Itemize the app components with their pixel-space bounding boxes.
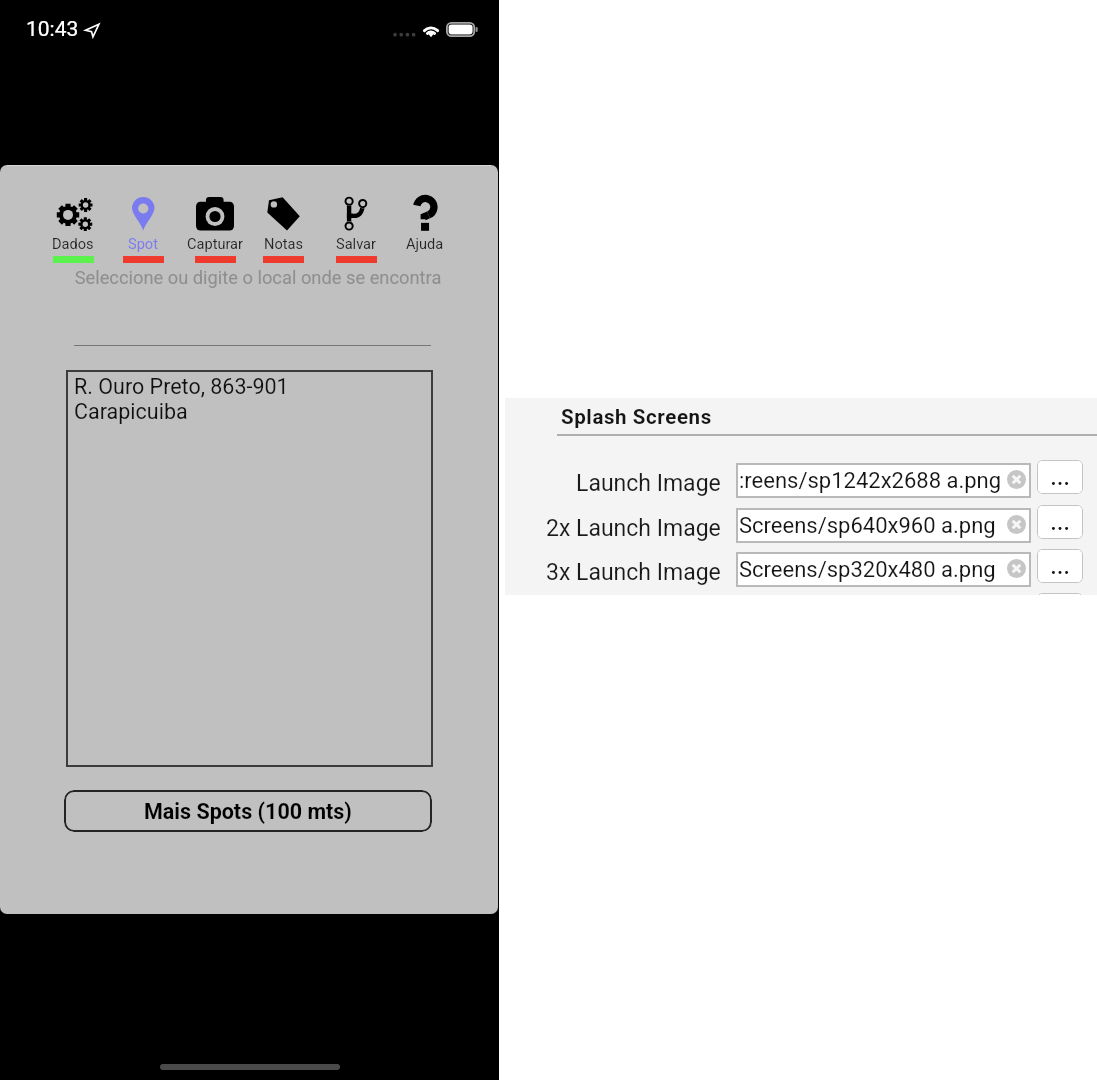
staticText: Mais Spots (100 mts) xyxy=(144,799,352,824)
button[interactable]: Dados xyxy=(38,196,108,266)
button[interactable]: Screens/sp640x960 a.png xyxy=(736,508,1031,543)
button[interactable]: :reens/sp1242x2688 a.png xyxy=(736,463,1031,498)
button[interactable]: Browse xyxy=(1037,505,1083,539)
button[interactable]: Spot xyxy=(108,196,178,266)
staticText: 2x Launch Image xyxy=(546,515,721,542)
button[interactable]: Clear xyxy=(1007,470,1026,489)
staticText: R. Ouro Preto, 863-901 xyxy=(74,374,289,399)
staticText: Launch Image xyxy=(576,470,721,497)
staticText: :reens/sp1242x2688 a.png xyxy=(739,468,1002,494)
staticText: Spot xyxy=(128,235,158,252)
button[interactable]: Screens/sp320x480 a.png xyxy=(736,552,1031,587)
staticText: Dados xyxy=(52,235,94,252)
button[interactable]: Browse xyxy=(1037,460,1083,494)
button[interactable]: Clear xyxy=(1007,559,1026,578)
staticText: Notas xyxy=(264,235,303,252)
button[interactable]: Launch Image xyxy=(505,466,721,500)
button[interactable]: 3x Launch Image xyxy=(505,555,721,589)
staticText: 10:43 xyxy=(26,17,79,42)
staticText: Splash Screens xyxy=(561,405,712,429)
button[interactable]: Browse xyxy=(1037,549,1083,583)
button[interactable]: Capturar xyxy=(180,196,250,266)
button[interactable]: Notas xyxy=(248,196,318,266)
staticText: Screens/sp320x480 a.png xyxy=(739,557,996,583)
staticText: Capturar xyxy=(187,235,243,252)
staticText: Salvar xyxy=(336,235,376,252)
button[interactable]: Clear xyxy=(1007,515,1026,534)
staticText: Ajuda xyxy=(406,235,444,252)
button[interactable]: Salvar xyxy=(321,196,391,266)
staticText: Screens/sp640x960 a.png xyxy=(739,513,996,539)
button[interactable]: Mais Spots (100 mts) xyxy=(64,790,432,832)
staticText: Carapicuiba xyxy=(74,399,188,424)
staticText: Seleccione ou digite o local onde se enc… xyxy=(18,267,498,288)
button[interactable]: Ajuda xyxy=(390,196,460,266)
staticText: 3x Launch Image xyxy=(546,559,721,586)
button[interactable]: 2x Launch Image xyxy=(505,511,721,545)
